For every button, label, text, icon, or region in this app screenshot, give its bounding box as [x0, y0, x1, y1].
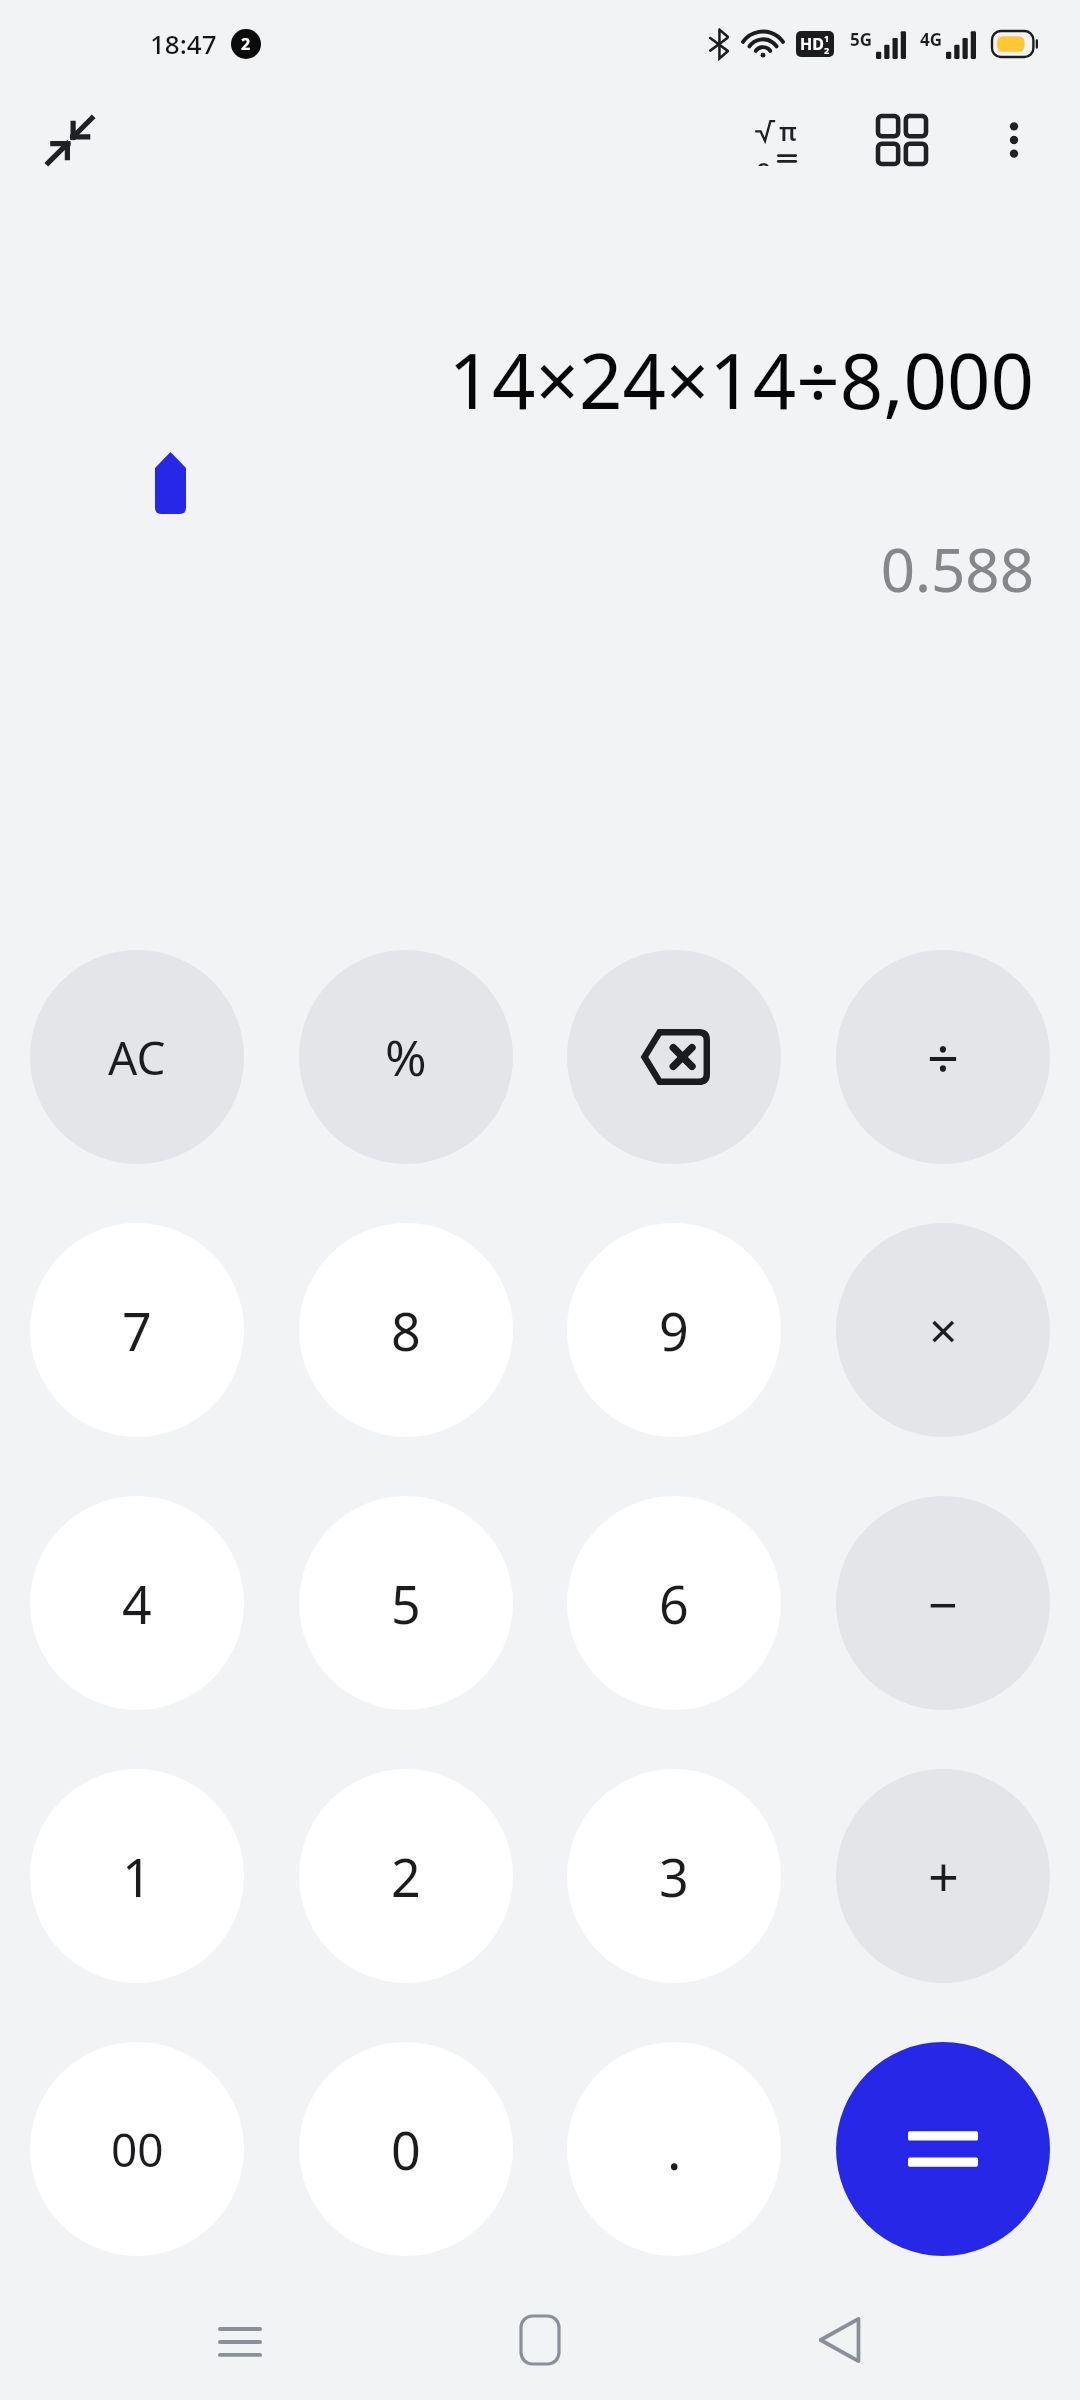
staticText: 1 — [824, 32, 830, 44]
staticText: 2 — [241, 33, 251, 55]
button[interactable]: Scientific mode — [742, 98, 826, 182]
staticText: π — [779, 114, 797, 148]
button[interactable]: Collapse — [30, 100, 110, 180]
staticText: 5 — [391, 1568, 421, 1639]
staticText: 4G — [920, 28, 943, 51]
button[interactable]: Recents — [180, 2280, 300, 2400]
button[interactable]: 0 — [299, 2042, 513, 2256]
button[interactable]: × — [836, 1223, 1050, 1437]
button[interactable]: % — [299, 950, 513, 1164]
button[interactable]: 00 — [30, 2042, 244, 2256]
button[interactable]: 9 — [567, 1223, 781, 1437]
button[interactable]: 1 — [30, 1769, 244, 1983]
button[interactable]: 8 — [299, 1223, 513, 1437]
button[interactable]: Converter — [860, 98, 944, 182]
staticText: 18:47 — [150, 26, 217, 61]
staticText: 00 — [111, 2118, 164, 2181]
staticText: e — [756, 150, 771, 166]
staticText: 0 — [391, 2114, 421, 2185]
staticText: AC — [108, 1026, 166, 1089]
staticText: HD — [800, 33, 824, 55]
staticText: 1 — [122, 1841, 152, 1912]
staticText: 14×24×14÷8,000 — [46, 328, 1034, 432]
staticText: 8 — [391, 1295, 421, 1366]
button[interactable]: Equals — [836, 2042, 1050, 2256]
staticText: 2 — [391, 1841, 421, 1912]
staticText: 0.588 — [46, 528, 1034, 610]
button[interactable]: ÷ — [836, 950, 1050, 1164]
button[interactable]: Back — [780, 2280, 900, 2400]
staticText: . — [667, 2112, 682, 2186]
button[interactable]: . — [567, 2042, 781, 2256]
staticText: + — [928, 1839, 959, 1913]
button[interactable]: 5 — [299, 1496, 513, 1710]
button[interactable]: More options — [972, 98, 1056, 182]
button[interactable]: Backspace — [567, 950, 781, 1164]
button[interactable]: AC — [30, 950, 244, 1164]
staticText: 4 — [122, 1568, 152, 1639]
button[interactable]: 2 — [299, 1769, 513, 1983]
button[interactable]: 7 — [30, 1223, 244, 1437]
staticText: 7 — [122, 1295, 152, 1366]
button[interactable]: Home — [480, 2280, 600, 2400]
staticText: 3 — [659, 1841, 689, 1912]
staticText: 5G — [850, 28, 873, 51]
button[interactable]: − — [836, 1496, 1050, 1710]
button[interactable]: + — [836, 1769, 1050, 1983]
button[interactable]: 3 — [567, 1769, 781, 1983]
staticText: 6 — [659, 1568, 689, 1639]
button[interactable]: 6 — [567, 1496, 781, 1710]
staticText: % — [385, 1023, 427, 1091]
button[interactable]: 4 — [30, 1496, 244, 1710]
staticText: 2 — [824, 44, 830, 56]
staticText: − — [928, 1568, 958, 1639]
staticText: 9 — [659, 1295, 689, 1366]
staticText: × — [929, 1296, 958, 1364]
staticText: ÷ — [927, 1019, 960, 1095]
